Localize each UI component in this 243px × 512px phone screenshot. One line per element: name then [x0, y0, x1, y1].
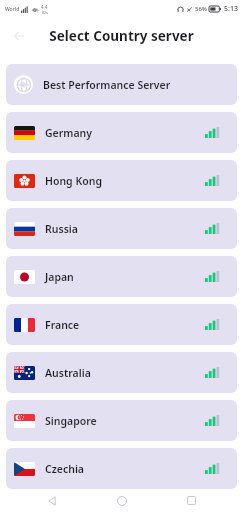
button[interactable]: Best Performance Server — [6, 64, 237, 105]
button[interactable]: Back — [35, 489, 69, 512]
staticText: France — [45, 318, 80, 332]
button[interactable]: Recent apps — [174, 489, 208, 512]
staticText: Czechia — [45, 462, 85, 476]
staticText: 56% — [195, 5, 207, 13]
button[interactable]: Home — [105, 489, 139, 512]
staticText: Japan — [45, 270, 74, 284]
staticText: Best Performance Server — [43, 78, 171, 92]
button[interactable]: Czechia — [6, 448, 237, 489]
button[interactable]: France — [6, 304, 237, 345]
staticText: Singapore — [45, 414, 97, 428]
staticText: 5:13 — [224, 4, 238, 14]
button[interactable]: Hong Kong — [6, 160, 237, 201]
button[interactable]: Back — [8, 25, 30, 47]
button[interactable]: Singapore — [6, 400, 237, 441]
staticText: Germany — [45, 126, 92, 140]
button[interactable]: Russia — [6, 208, 237, 249]
staticText: Russia — [45, 222, 78, 236]
button[interactable]: Japan — [6, 256, 237, 297]
button[interactable]: Germany — [6, 112, 237, 153]
staticText: Australia — [45, 366, 91, 380]
staticText: Hong Kong — [45, 174, 102, 188]
staticText: 4.4 — [41, 4, 48, 10]
staticText: K/s — [42, 10, 48, 15]
button[interactable]: Australia — [6, 352, 237, 393]
staticText: World — [5, 6, 20, 13]
staticText: Select Country server — [49, 27, 194, 45]
